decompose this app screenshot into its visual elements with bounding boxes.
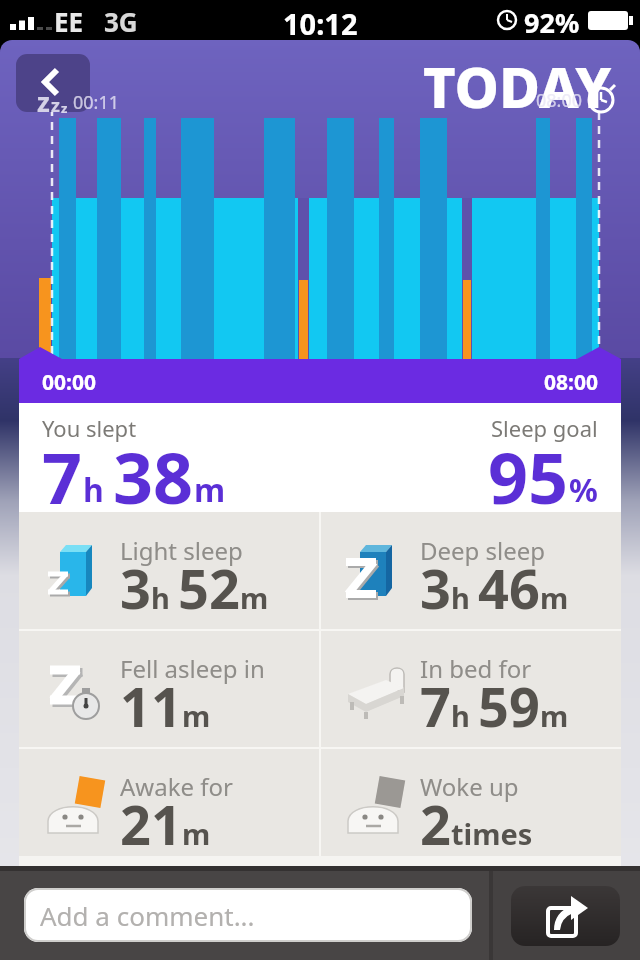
button[interactable]: Awake for bbox=[30, 748, 320, 866]
staticText: Sleep goal bbox=[491, 413, 598, 443]
staticText: 08:00 bbox=[536, 88, 583, 113]
staticText: In bed for bbox=[420, 652, 532, 685]
staticText: m bbox=[540, 578, 569, 617]
staticText: h bbox=[83, 468, 113, 512]
staticText: 21 bbox=[120, 787, 182, 861]
staticText: h bbox=[451, 696, 478, 735]
staticText: TODAY bbox=[423, 48, 612, 124]
staticText: 92% bbox=[524, 4, 580, 41]
staticText: 95 bbox=[488, 429, 569, 524]
staticText: You slept bbox=[42, 413, 137, 443]
staticText: Woke up bbox=[420, 770, 519, 803]
staticText: m bbox=[182, 814, 211, 853]
staticText: m bbox=[194, 468, 226, 512]
staticText: h bbox=[151, 578, 178, 617]
staticText: h bbox=[451, 578, 478, 617]
staticText: times bbox=[451, 814, 533, 853]
button[interactable]: Woke up bbox=[330, 748, 620, 866]
staticText: 3 bbox=[420, 551, 451, 625]
staticText: 00:00 bbox=[42, 368, 96, 397]
staticText: 2 bbox=[420, 787, 451, 861]
staticText: Fell asleep in bbox=[120, 652, 265, 685]
staticText: Awake for bbox=[120, 770, 233, 803]
staticText: 38 bbox=[113, 429, 194, 524]
button[interactable] bbox=[16, 54, 90, 112]
button[interactable]: Deep sleep bbox=[330, 512, 620, 630]
staticText: 7 bbox=[420, 669, 451, 743]
staticText: 10:12 bbox=[283, 4, 358, 43]
button[interactable]: In bed for bbox=[330, 630, 620, 748]
staticText: z bbox=[61, 99, 68, 117]
staticText: EE bbox=[54, 4, 84, 39]
staticText: 46 bbox=[478, 551, 540, 625]
button[interactable]: Fell asleep in bbox=[30, 630, 320, 748]
staticText: Deep sleep bbox=[420, 534, 546, 567]
staticText: Light sleep bbox=[120, 534, 243, 567]
staticText: Add a comment... bbox=[40, 898, 255, 933]
staticText: 3G bbox=[104, 4, 138, 39]
staticText: m bbox=[240, 578, 269, 617]
staticText: % bbox=[569, 468, 598, 512]
button[interactable]: Light sleep bbox=[30, 512, 320, 630]
staticText: 59 bbox=[478, 669, 540, 743]
staticText: 3 bbox=[120, 551, 151, 625]
staticText: 11 bbox=[120, 669, 182, 743]
staticText: z bbox=[37, 84, 50, 119]
staticText: m bbox=[182, 696, 211, 735]
button[interactable] bbox=[511, 886, 620, 946]
staticText: z bbox=[51, 93, 60, 118]
staticText: 7 bbox=[42, 429, 83, 524]
staticText: 08:00 bbox=[544, 368, 598, 397]
staticText: 52 bbox=[178, 551, 240, 625]
staticText: 00:11 bbox=[73, 90, 120, 115]
staticText: m bbox=[540, 696, 569, 735]
button[interactable]: Add a comment... bbox=[24, 888, 472, 942]
